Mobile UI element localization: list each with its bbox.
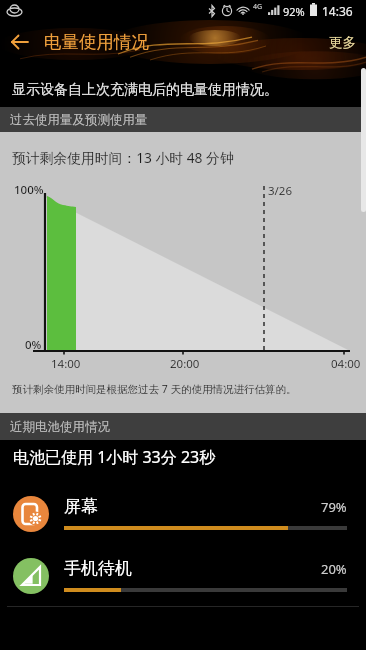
staticText: 更多	[329, 34, 356, 51]
staticText: 显示设备自上次充满电后的电量使用情况。	[12, 81, 278, 99]
staticText: 预计剩余使用时间：13 小时 48 分钟	[12, 148, 234, 167]
staticText: 手机待机	[64, 558, 132, 579]
staticText: 14:36	[322, 3, 353, 19]
staticText: 92%	[283, 4, 305, 19]
staticText: 20:00	[170, 356, 200, 372]
staticText: 0%	[25, 337, 42, 353]
staticText: 过去使用量及预测使用量	[10, 112, 148, 128]
staticText: 04:00	[331, 356, 361, 372]
staticText: 14:00	[51, 356, 81, 372]
button[interactable]: Back	[0, 22, 40, 62]
staticText: 电量使用情况	[44, 31, 149, 53]
button[interactable]: 屏幕	[0, 490, 366, 544]
staticText: 3/26	[268, 183, 293, 199]
button[interactable]: 手机待机	[0, 552, 366, 606]
staticText: 近期电池使用情况	[10, 419, 110, 435]
staticText: 4G	[253, 2, 263, 12]
staticText: 79%	[321, 498, 347, 516]
button[interactable]: 更多	[317, 25, 366, 60]
staticText: 100%	[14, 182, 44, 198]
staticText: 屏幕	[64, 496, 98, 517]
staticText: 电池已使用 1小时 33分 23秒	[13, 446, 216, 468]
staticText: 预计剩余使用时间是根据您过去 7 天的使用情况进行估算的。	[12, 382, 297, 396]
staticText: 20%	[321, 560, 347, 578]
